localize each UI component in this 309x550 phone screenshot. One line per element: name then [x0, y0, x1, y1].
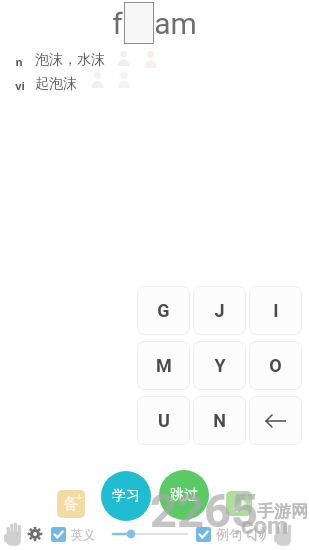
- button[interactable]: N: [193, 396, 246, 445]
- staticText: Y: [214, 355, 226, 376]
- staticText: O: [269, 355, 282, 376]
- button[interactable]: Hand: [4, 521, 23, 547]
- button[interactable]: 备: [57, 490, 85, 518]
- staticText: 跳过: [170, 486, 198, 504]
- button[interactable]: Pronounce: [246, 523, 270, 545]
- staticText: U: [158, 410, 170, 431]
- staticText: vi: [15, 78, 25, 93]
- other: Backspace: [266, 411, 286, 431]
- staticText: 手游网: [257, 501, 308, 522]
- button[interactable]: Add note: [226, 491, 252, 516]
- staticText: f: [112, 6, 123, 41]
- button[interactable]: Missing letter: [124, 2, 154, 44]
- staticText: 起泡沫: [35, 75, 77, 93]
- staticText: 2265: [150, 483, 258, 538]
- staticText: I: [273, 300, 279, 321]
- button[interactable]: Y: [193, 341, 246, 390]
- button[interactable]: J: [193, 286, 246, 335]
- staticText: 例句: [216, 526, 242, 542]
- staticText: N: [213, 410, 226, 431]
- staticText: 备: [63, 494, 79, 514]
- staticText: .com: [234, 512, 288, 540]
- button[interactable]: 例句: [196, 526, 242, 542]
- button[interactable]: G: [137, 286, 190, 335]
- staticText: n: [15, 54, 23, 69]
- button[interactable]: Hand: [274, 521, 293, 547]
- button[interactable]: 跳过: [159, 470, 209, 520]
- button[interactable]: I: [249, 286, 302, 335]
- staticText: 泡沫，水沫: [35, 51, 105, 69]
- staticText: G: [157, 300, 170, 321]
- staticText: 学习: [112, 487, 140, 505]
- button[interactable]: Backspace: [249, 396, 302, 445]
- button[interactable]: 学习: [101, 471, 151, 521]
- button[interactable]: 英义: [51, 527, 95, 542]
- staticText: 英义: [71, 527, 95, 542]
- staticText: J: [214, 300, 225, 321]
- button[interactable]: M: [137, 341, 190, 390]
- staticText: am: [154, 6, 197, 41]
- staticText: M: [156, 355, 172, 376]
- staticText: +: [76, 490, 83, 504]
- button[interactable]: O: [249, 341, 302, 390]
- button[interactable]: U: [137, 396, 190, 445]
- button[interactable]: Settings: [28, 527, 42, 541]
